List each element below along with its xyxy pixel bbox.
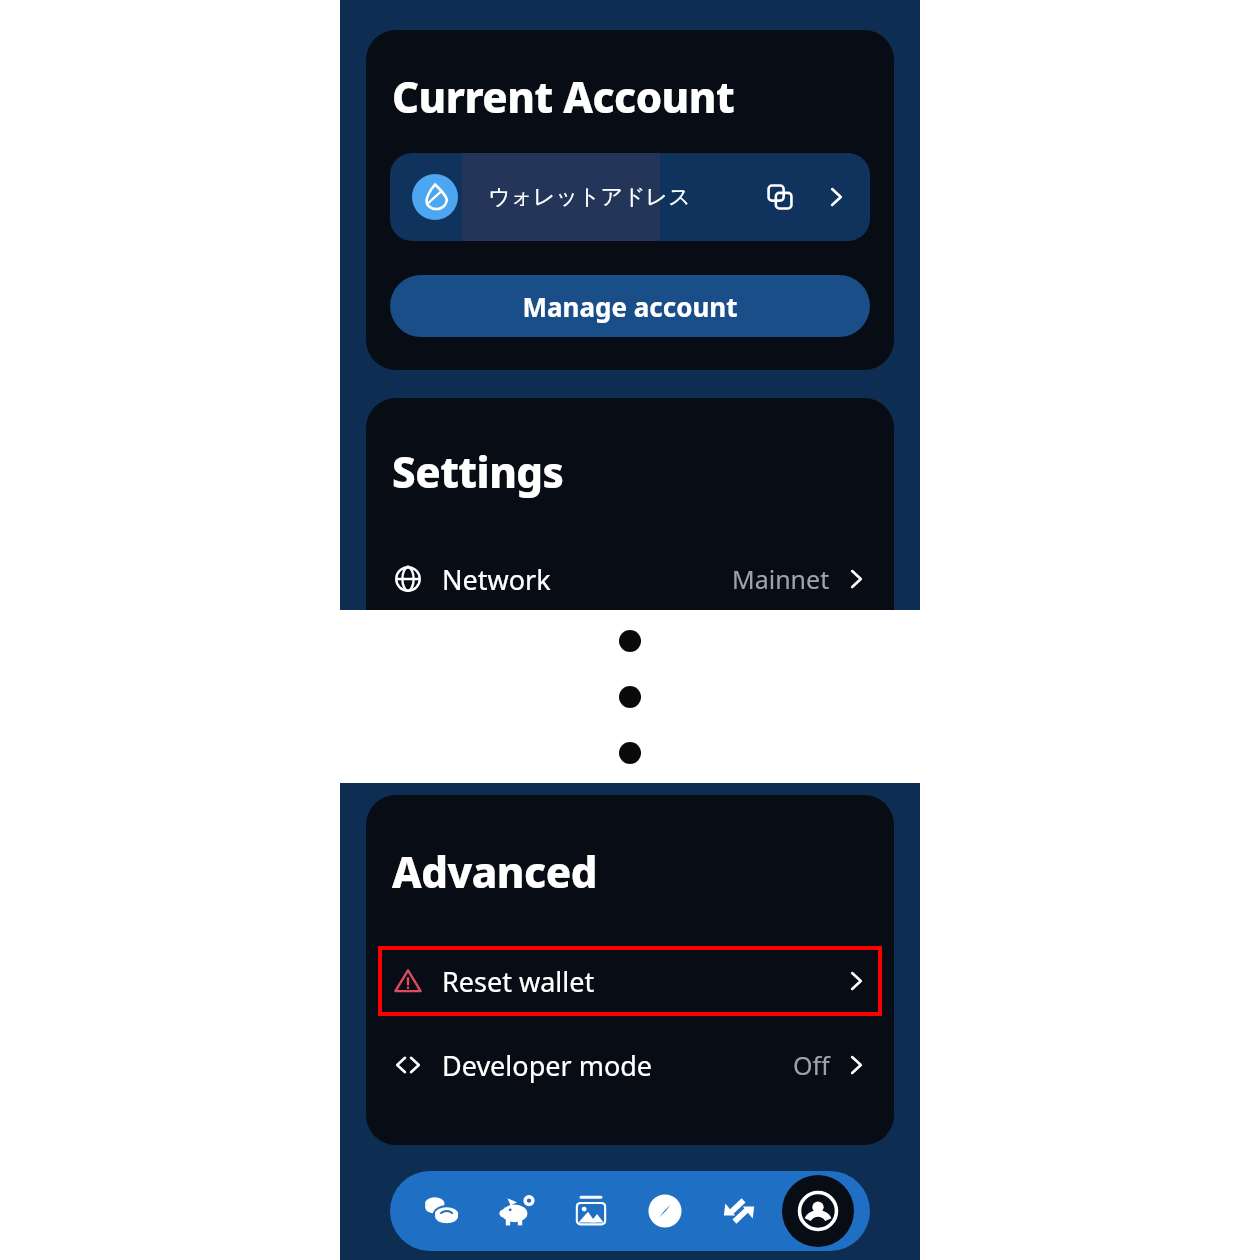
- button[interactable]: Developer mode: [366, 1030, 894, 1100]
- staticText: Current Account: [392, 68, 735, 125]
- button[interactable]: Staking: [485, 1179, 549, 1243]
- button[interactable]: Swap: [707, 1179, 771, 1243]
- staticText: Settings: [392, 443, 564, 500]
- staticText: Reset wallet: [442, 963, 595, 1000]
- button[interactable]: Explore: [633, 1179, 697, 1243]
- button[interactable]: Network: [366, 548, 894, 610]
- button[interactable]: ウォレットアドレス: [390, 153, 870, 241]
- button[interactable]: Copy address: [758, 175, 802, 219]
- staticText: Developer mode: [442, 1047, 653, 1084]
- staticText: Manage account: [522, 289, 738, 324]
- button[interactable]: Profile: [782, 1175, 854, 1247]
- staticText: Network: [442, 561, 551, 598]
- staticText: Advanced: [392, 843, 597, 900]
- staticText: ウォレットアドレス: [488, 183, 691, 211]
- button[interactable]: Coins: [410, 1179, 474, 1243]
- staticText: Mainnet: [732, 562, 830, 596]
- button[interactable]: NFTs: [559, 1179, 623, 1243]
- staticText: Off: [793, 1048, 830, 1082]
- button[interactable]: Reset wallet: [378, 946, 882, 1016]
- button[interactable]: Manage account: [390, 275, 870, 337]
